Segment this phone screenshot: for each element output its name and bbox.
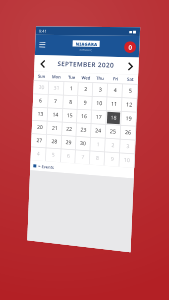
button[interactable]: = Events [33, 160, 131, 178]
button[interactable]: 31 [49, 82, 63, 94]
button[interactable]: 3 [93, 84, 106, 96]
staticText: Tue [68, 75, 75, 80]
staticText: 7 [81, 153, 85, 161]
staticText: 5 [52, 151, 55, 159]
button[interactable]: 9 [78, 97, 91, 109]
staticText: 24 [95, 127, 101, 135]
button[interactable]: 13 [33, 108, 47, 120]
staticText: 28 [51, 138, 57, 145]
staticText: 25 [110, 128, 116, 136]
button[interactable]: 12 [122, 99, 136, 111]
button[interactable]: 25 [106, 126, 120, 138]
button[interactable]: Notifications [124, 41, 136, 53]
staticText: 20 [37, 124, 43, 131]
staticText: 2 [84, 86, 87, 93]
staticText: 6 [39, 97, 42, 104]
button[interactable]: 22 [63, 123, 75, 135]
button[interactable]: 29 [62, 137, 75, 149]
button[interactable]: 4 [32, 148, 45, 160]
button[interactable]: 5 [123, 85, 136, 97]
button[interactable]: 30 [76, 137, 89, 150]
staticText: 3 [99, 86, 102, 94]
button[interactable]: 26 [121, 126, 135, 139]
staticText: 3 [126, 143, 130, 150]
staticText: 8 [96, 154, 99, 162]
button[interactable]: 18 [107, 112, 120, 124]
button[interactable]: Previous month [36, 57, 49, 70]
staticText: Mon [52, 74, 61, 79]
staticText: 2 [111, 142, 115, 149]
staticText: 10 [96, 100, 103, 107]
button[interactable]: 1 [91, 138, 104, 151]
staticText: 9 [110, 155, 114, 163]
button[interactable]: 10 [120, 154, 134, 167]
staticText: CATHOLIC [80, 48, 92, 51]
button[interactable]: 6 [34, 95, 47, 107]
staticText: Sun [38, 74, 46, 79]
button[interactable]: 2 [79, 83, 92, 95]
staticText: 14 [52, 111, 59, 119]
staticText: 29 [65, 139, 72, 146]
staticText: 4 [113, 87, 117, 94]
button[interactable]: 27 [32, 135, 46, 147]
staticText: 23 [80, 126, 87, 134]
staticText: 10 [123, 156, 130, 164]
button[interactable]: 1 [64, 83, 77, 95]
staticText: 27 [36, 137, 42, 144]
staticText: 7 [54, 98, 57, 105]
staticText: NIAGARA [76, 41, 98, 47]
staticText: 9:41 [39, 29, 47, 34]
staticText: Fri [113, 76, 118, 81]
staticText: 12 [126, 101, 133, 109]
button[interactable]: 23 [77, 124, 90, 136]
staticText: 1 [96, 141, 100, 148]
staticText: 19 [125, 115, 132, 123]
staticText: 31 [53, 84, 60, 92]
staticText: 21 [52, 124, 58, 132]
button[interactable]: 4 [108, 84, 121, 96]
staticText: 0 [128, 43, 133, 52]
staticText: 26 [125, 129, 131, 137]
button[interactable]: 21 [48, 122, 61, 134]
staticText: = Events [38, 164, 54, 170]
staticText: 13 [37, 110, 44, 118]
button[interactable]: 19 [122, 113, 135, 125]
staticText: 1 [70, 85, 73, 92]
button[interactable]: 8 [90, 152, 103, 164]
staticText: 16 [81, 113, 87, 120]
staticText: 18 [110, 114, 117, 122]
button[interactable]: 15 [63, 110, 76, 122]
button[interactable]: 8 [64, 96, 77, 108]
button[interactable]: Next month [123, 59, 137, 72]
button[interactable]: 3 [121, 140, 134, 153]
staticText: 6 [67, 152, 70, 160]
button[interactable]: 16 [78, 110, 90, 123]
staticText: 15 [66, 112, 73, 119]
staticText: 9 [83, 99, 87, 107]
button[interactable]: 6 [62, 150, 74, 162]
button[interactable]: 28 [47, 136, 61, 148]
staticText: 5 [128, 87, 132, 95]
button[interactable]: 7 [76, 151, 89, 163]
button[interactable]: 9 [105, 153, 118, 166]
button[interactable]: 7 [49, 96, 62, 107]
button[interactable]: 11 [107, 98, 121, 110]
staticText: 30 [38, 84, 45, 91]
button[interactable]: 24 [92, 125, 105, 137]
button[interactable]: 10 [93, 97, 106, 110]
staticText: Thu [96, 75, 105, 81]
button[interactable]: 5 [46, 149, 60, 161]
staticText: 8 [69, 98, 72, 106]
button[interactable]: Menu [37, 40, 47, 50]
staticText: 30 [80, 140, 86, 147]
button[interactable]: 17 [92, 111, 105, 123]
staticText: 22 [66, 125, 72, 133]
button[interactable]: 20 [33, 121, 46, 133]
staticText: 4 [37, 150, 40, 158]
staticText: Sat [127, 76, 135, 82]
staticText: 17 [95, 113, 102, 121]
button[interactable]: 2 [106, 139, 119, 152]
button[interactable]: 30 [34, 82, 48, 93]
staticText: 11 [111, 100, 117, 108]
button[interactable]: 14 [48, 109, 62, 121]
